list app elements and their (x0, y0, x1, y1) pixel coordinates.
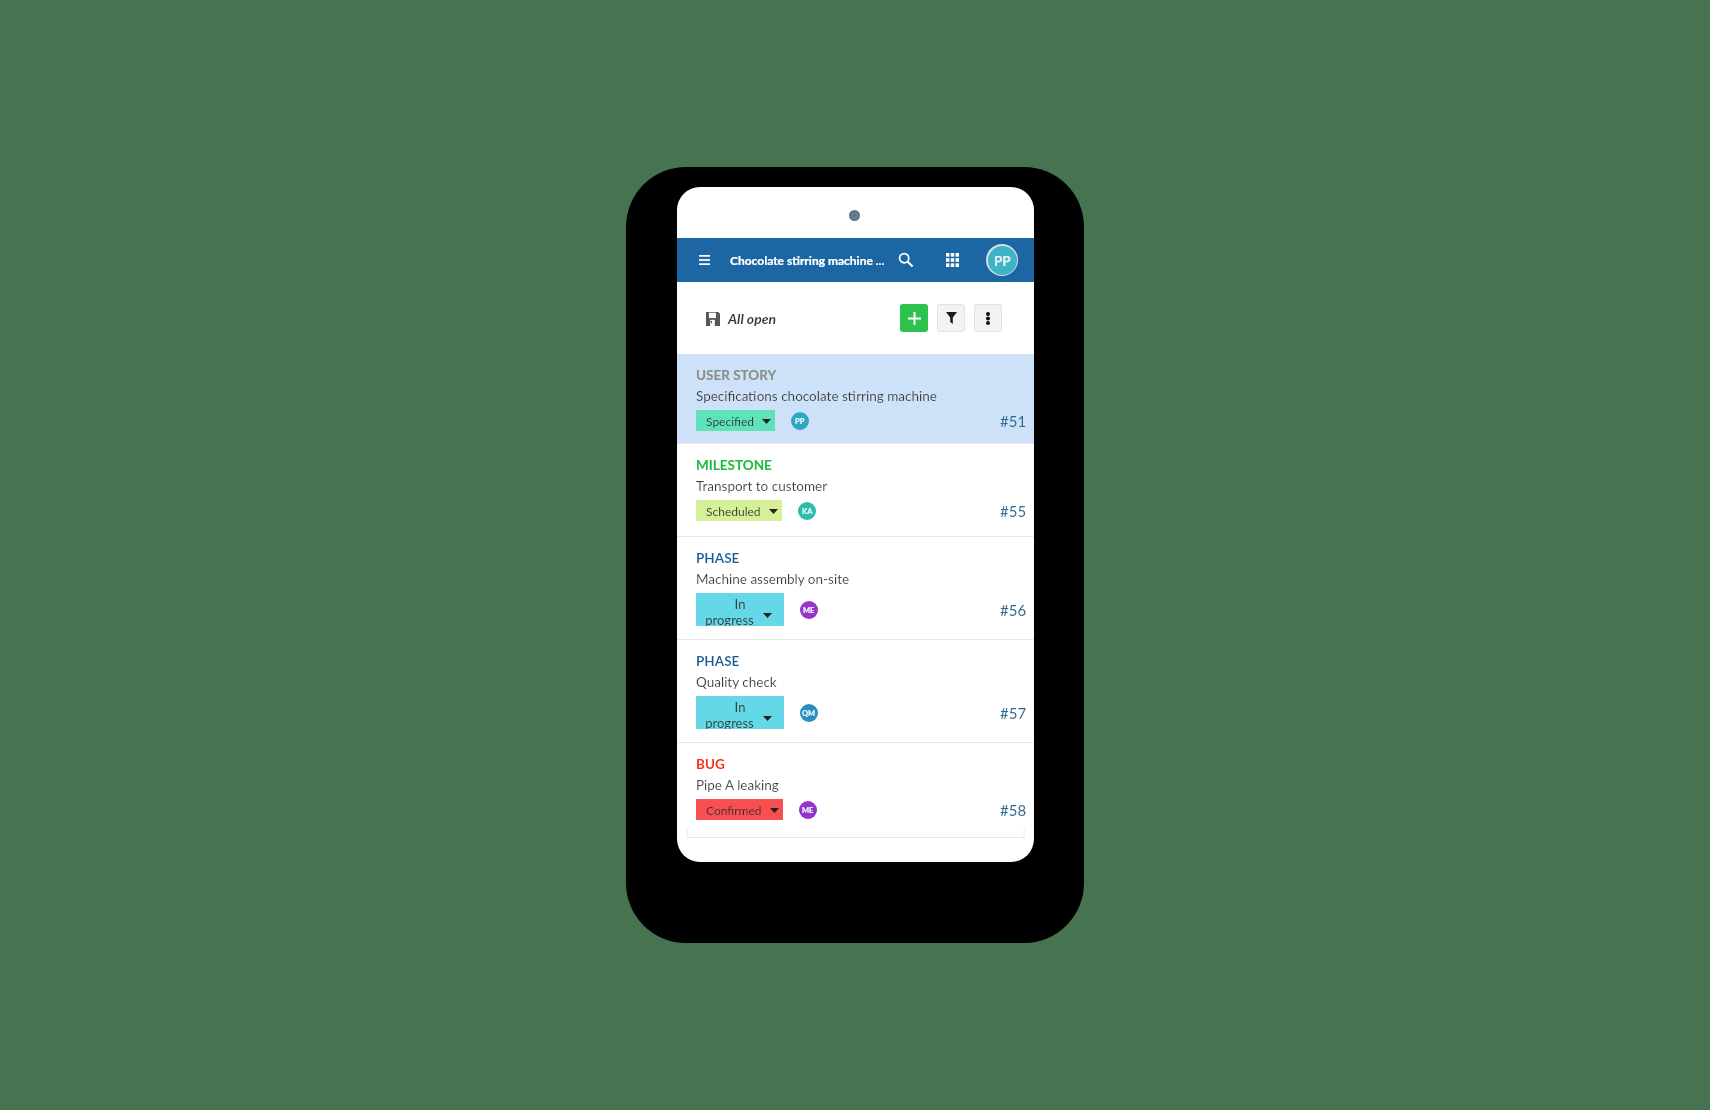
button[interactable]: PHASE (677, 640, 1034, 742)
staticText: #58 (1000, 801, 1027, 819)
button[interactable]: PHASE (677, 537, 1034, 639)
staticText: KA (802, 507, 813, 516)
staticText: In (696, 596, 784, 612)
staticText: #55 (1000, 502, 1027, 520)
staticText: progress (696, 612, 763, 626)
staticText: Specified (706, 414, 754, 428)
staticText: Scheduled (706, 504, 761, 518)
staticText: ME (803, 606, 815, 615)
button[interactable]: Apps (935, 238, 969, 282)
button[interactable]: PP (986, 244, 1018, 276)
staticText: MILESTONE (696, 457, 772, 473)
staticText: USER STORY (696, 367, 777, 383)
button[interactable]: MILESTONE (677, 444, 1034, 536)
staticText: PHASE (696, 550, 740, 566)
staticText: In (696, 699, 784, 715)
button[interactable]: USER STORY (677, 354, 1034, 443)
button[interactable]: Menu (687, 238, 721, 282)
staticText: Quality check (696, 674, 777, 690)
staticText: PP (795, 417, 805, 426)
staticText: progress (696, 715, 763, 729)
button[interactable]: In (696, 593, 784, 626)
staticText: #51 (1000, 412, 1027, 430)
staticText: ME (802, 806, 814, 815)
button[interactable]: Confirmed (696, 799, 783, 820)
staticText: Transport to customer (696, 478, 828, 494)
button[interactable]: Specified (696, 410, 775, 431)
staticText: Specifications chocolate stirring machin… (696, 388, 937, 404)
button[interactable]: Filter (937, 304, 965, 332)
staticText: Chocolate stirring machine ... (730, 253, 885, 267)
staticText: Confirmed (706, 803, 762, 817)
button[interactable]: Scheduled (696, 500, 782, 521)
staticText: Machine assembly on-site (696, 571, 850, 587)
button[interactable]: All open (706, 310, 777, 327)
button[interactable]: Search (889, 238, 923, 282)
staticText: All open (728, 310, 777, 327)
staticText: #57 (1000, 704, 1027, 722)
staticText: #56 (1000, 601, 1027, 619)
staticText: PP (994, 253, 1011, 269)
staticText: Pipe A leaking (696, 777, 779, 793)
button[interactable]: Add (900, 304, 928, 332)
staticText: QM (802, 709, 816, 718)
staticText: BUG (696, 756, 725, 772)
button[interactable]: In (696, 696, 784, 729)
button[interactable]: More options (974, 304, 1002, 332)
button[interactable]: BUG (677, 743, 1034, 835)
staticText: PHASE (696, 653, 740, 669)
